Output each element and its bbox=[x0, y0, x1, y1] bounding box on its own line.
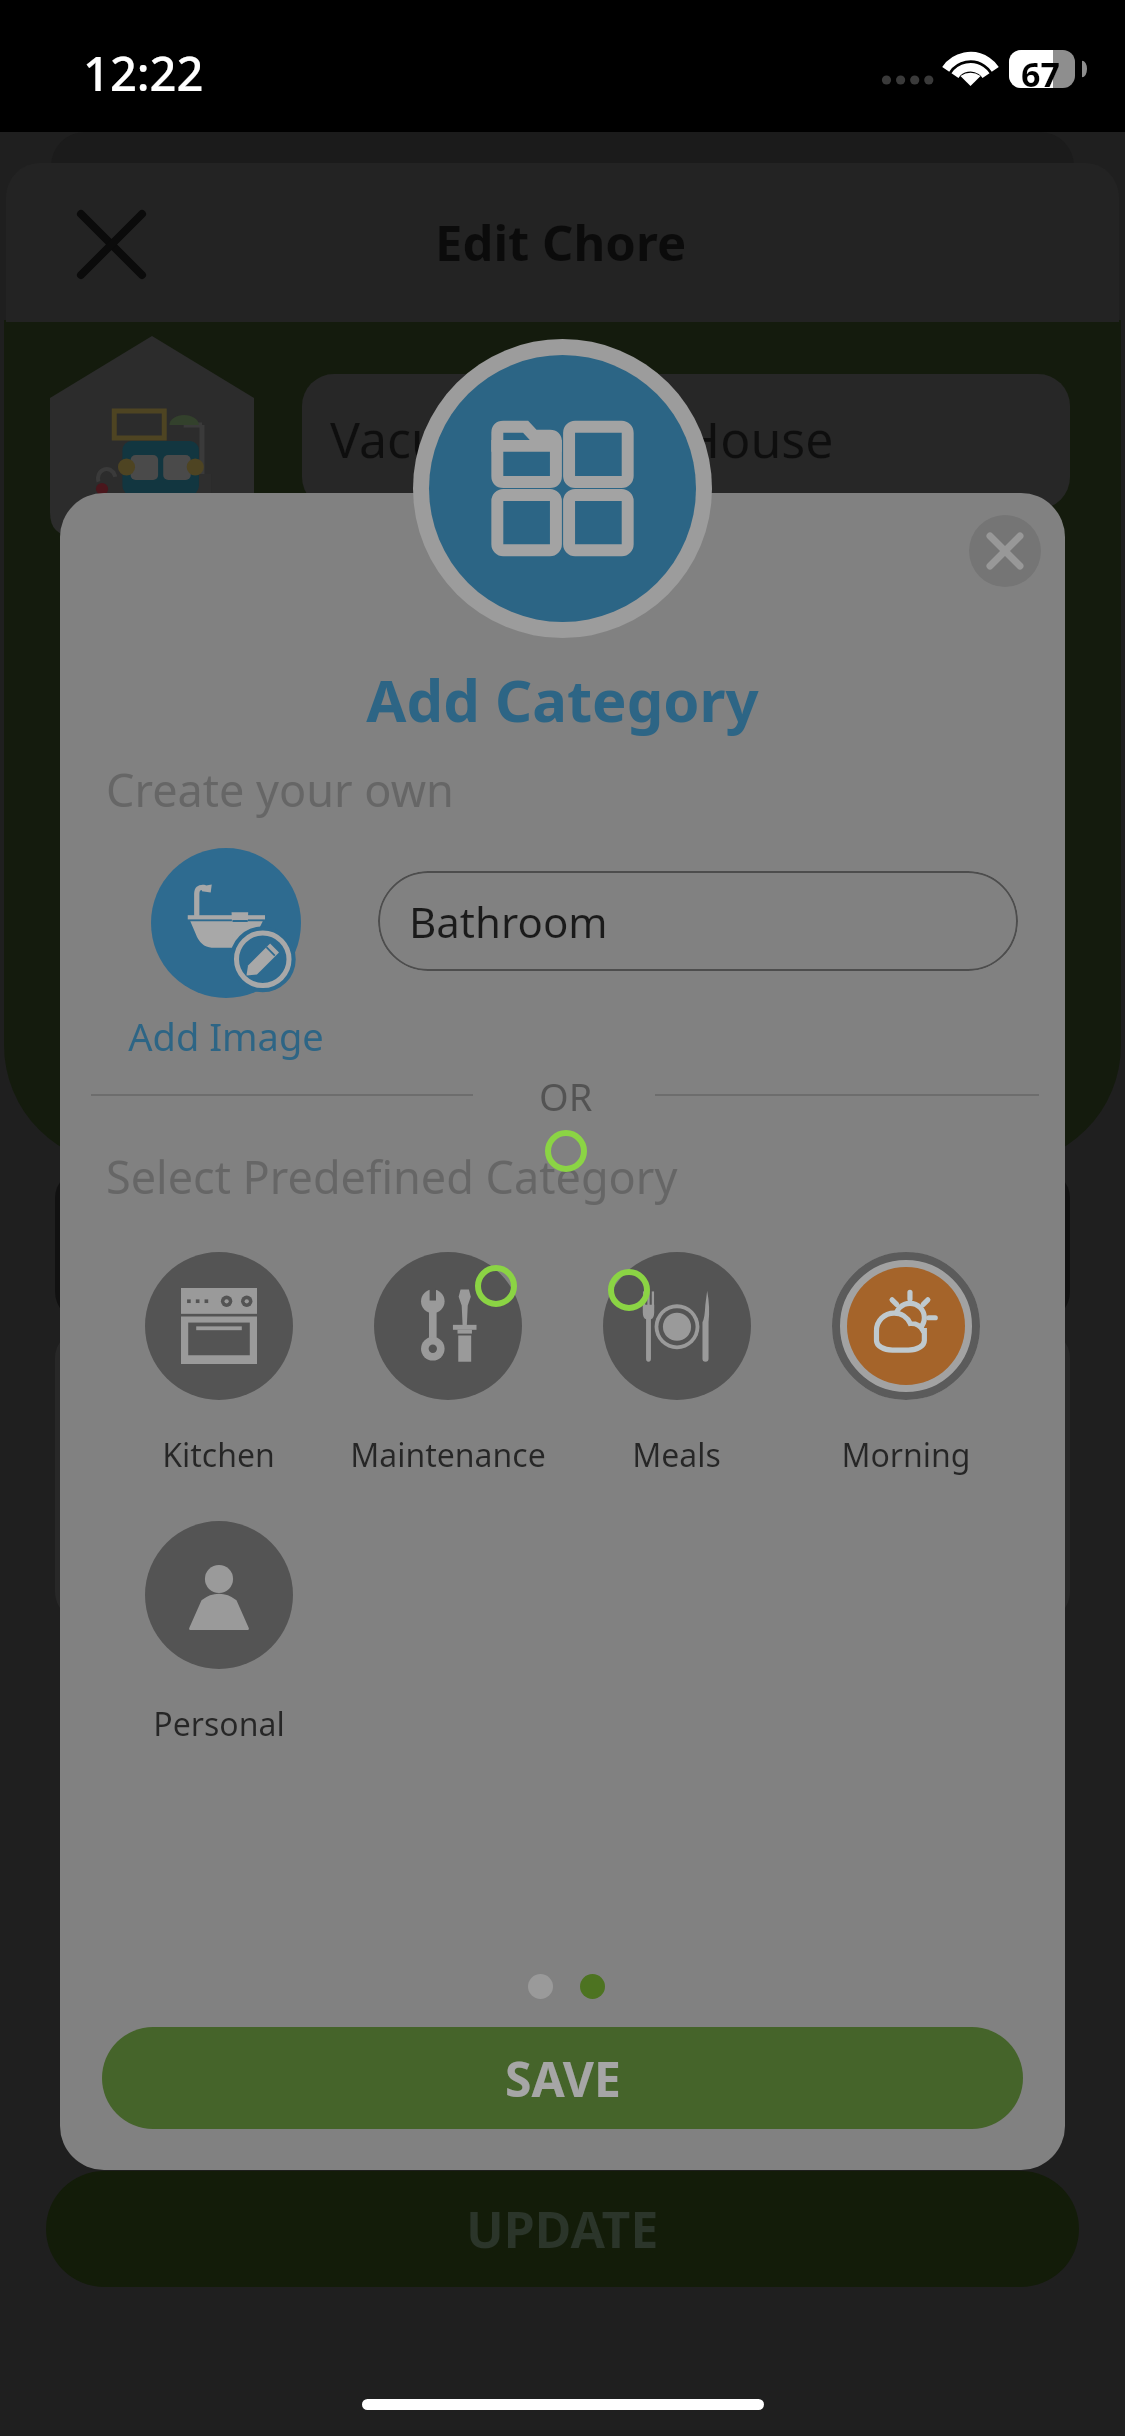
button[interactable]: Close dialog bbox=[969, 515, 1041, 587]
staticText: Morning bbox=[841, 1433, 971, 1477]
button[interactable]: Personal bbox=[104, 1521, 333, 1746]
staticText: Edit Chore bbox=[435, 209, 687, 276]
staticText: Create your own bbox=[106, 759, 454, 820]
staticText: SAVE bbox=[505, 2046, 621, 2111]
button[interactable]: Kitchen bbox=[104, 1252, 333, 1477]
staticText: 12:22 bbox=[83, 41, 204, 105]
button[interactable]: Add Image bbox=[151, 848, 301, 1062]
button[interactable]: Close bbox=[72, 205, 151, 284]
button[interactable]: UPDATE bbox=[46, 2171, 1079, 2287]
button[interactable]: Meals bbox=[562, 1252, 791, 1477]
button[interactable]: SAVE bbox=[102, 2027, 1023, 2129]
staticText: Bathroom bbox=[409, 893, 608, 950]
staticText: Add Image bbox=[128, 1010, 324, 1062]
staticText: UPDATE bbox=[466, 2195, 659, 2263]
staticText: Add Category bbox=[60, 660, 1065, 739]
staticText: Kitchen bbox=[162, 1433, 275, 1477]
button[interactable]: Maintenance bbox=[333, 1252, 562, 1477]
staticText: Personal bbox=[153, 1702, 285, 1746]
staticText: Maintenance bbox=[350, 1433, 546, 1477]
staticText: OR bbox=[539, 1070, 593, 1122]
staticText: 67 bbox=[1021, 51, 1060, 97]
staticText: Select Predefined Category bbox=[106, 1146, 678, 1207]
staticText: 20 bbox=[997, 1338, 1066, 1420]
staticText: Meals bbox=[632, 1433, 721, 1477]
button[interactable]: Bathroom bbox=[378, 871, 1018, 971]
button[interactable]: Morning bbox=[791, 1252, 1020, 1477]
staticText: Vacuum Entire House bbox=[330, 405, 834, 473]
